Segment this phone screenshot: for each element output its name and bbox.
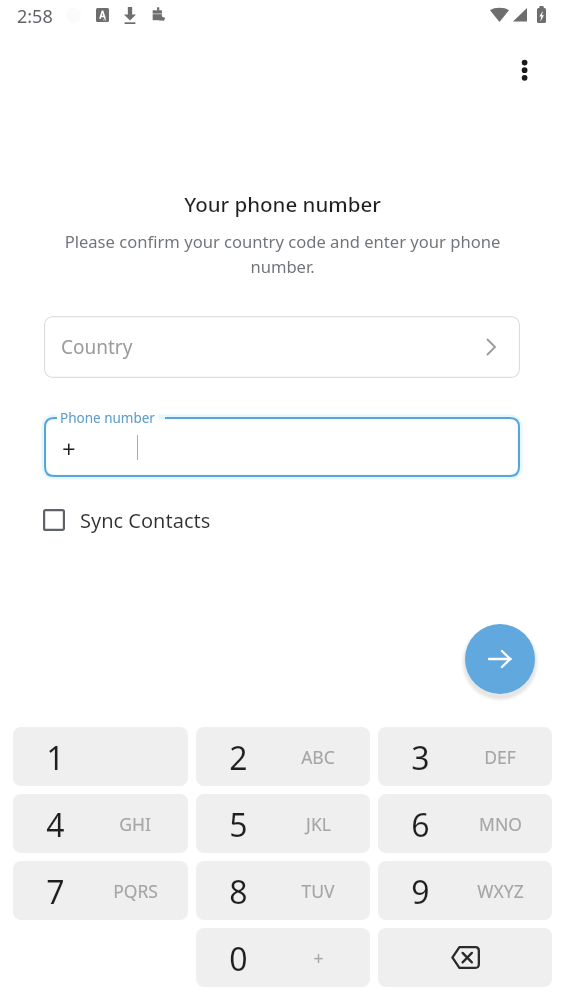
staticText: 0 xyxy=(229,937,248,981)
button[interactable]: Sync Contacts xyxy=(30,498,211,542)
staticText: 9 xyxy=(411,870,430,914)
staticText: DEF xyxy=(484,745,516,769)
button[interactable]: More options xyxy=(500,46,548,94)
button[interactable]: 6 xyxy=(378,794,552,853)
button[interactable]: Next xyxy=(465,624,535,694)
staticText: Your phone number xyxy=(0,190,565,218)
staticText: 2:58 xyxy=(17,4,53,29)
button[interactable]: Country xyxy=(44,316,520,378)
button[interactable]: 1 xyxy=(13,727,188,786)
staticText: TUV xyxy=(301,879,335,903)
staticText: Sync Contacts xyxy=(80,507,211,534)
staticText: 2 xyxy=(229,736,248,780)
staticText: 1 xyxy=(46,736,65,780)
staticText: GHI xyxy=(119,812,151,836)
button[interactable]: 0 xyxy=(196,928,370,987)
staticText: + xyxy=(313,946,324,970)
staticText: 4 xyxy=(46,803,65,847)
staticText: ABC xyxy=(301,745,335,769)
staticText: PQRS xyxy=(113,879,158,903)
staticText: Please confirm your country code and ent… xyxy=(58,230,507,277)
button[interactable]: 5 xyxy=(196,794,370,853)
staticText: 3 xyxy=(411,736,430,780)
staticText: 7 xyxy=(46,870,65,914)
staticText: 5 xyxy=(229,803,248,847)
button[interactable]: 7 xyxy=(13,861,188,920)
staticText: + xyxy=(62,432,76,465)
staticText: Phone number xyxy=(60,409,155,427)
staticText: 6 xyxy=(411,803,430,847)
button[interactable]: 9 xyxy=(378,861,552,920)
button[interactable]: Phone number xyxy=(44,417,520,477)
staticText: JKL xyxy=(306,812,331,836)
staticText: MNO xyxy=(479,812,522,836)
button[interactable]: 8 xyxy=(196,861,370,920)
staticText: Country xyxy=(61,334,133,360)
staticText: 8 xyxy=(229,870,248,914)
staticText: WXYZ xyxy=(477,879,524,903)
button[interactable]: 2 xyxy=(196,727,370,786)
button[interactable]: 4 xyxy=(13,794,188,853)
button[interactable]: Backspace xyxy=(378,928,552,987)
button[interactable]: 3 xyxy=(378,727,552,786)
